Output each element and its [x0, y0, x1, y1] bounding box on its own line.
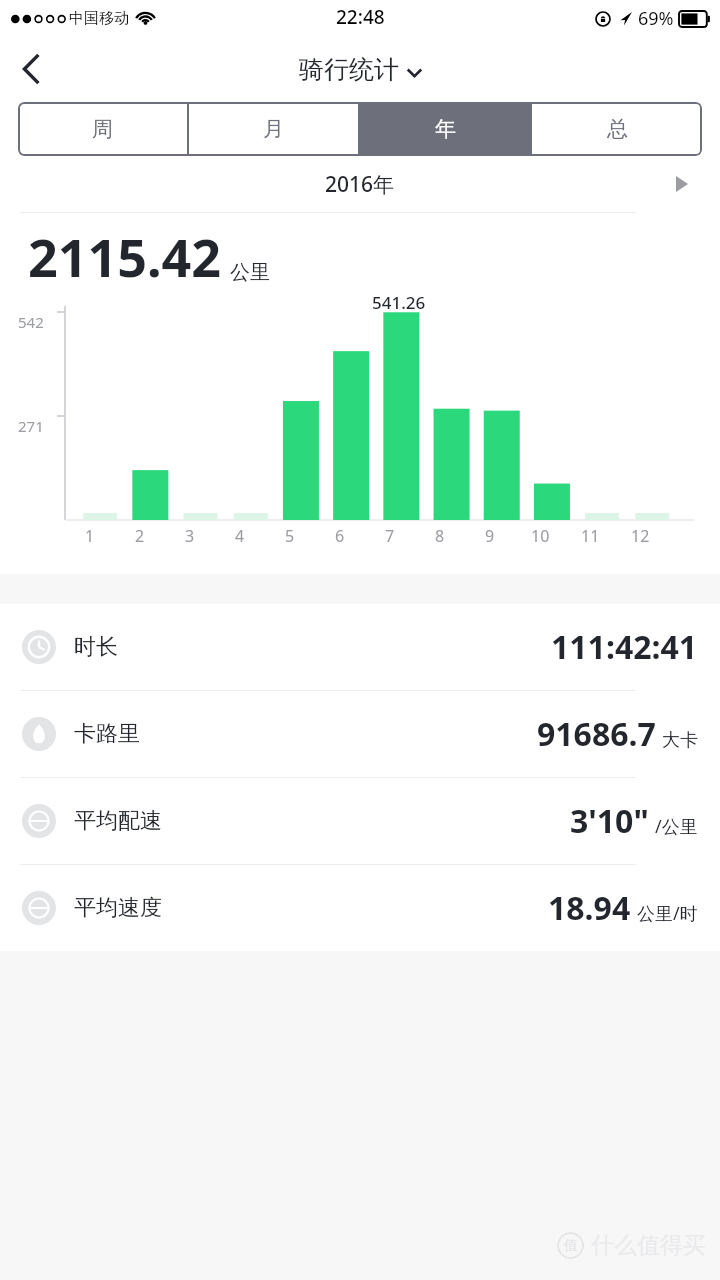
button[interactable]: 骑行统计	[293, 48, 428, 91]
staticText: 69%	[638, 6, 674, 31]
staticText: /公里	[655, 814, 698, 839]
button[interactable]: 月	[189, 102, 358, 156]
staticText: 2016年	[325, 170, 395, 199]
staticText: 值	[564, 1237, 578, 1255]
button[interactable]: 卡路里	[0, 691, 720, 777]
button[interactable]: Back	[0, 37, 64, 101]
staticText: 10	[531, 525, 550, 547]
staticText: 91686.7	[537, 712, 656, 756]
staticText: 8	[435, 525, 445, 547]
staticText: 542	[18, 312, 44, 332]
staticText: 时长	[74, 633, 118, 661]
button[interactable]: 年	[360, 102, 530, 156]
staticText: 7	[385, 525, 395, 547]
staticText: 大卡	[662, 729, 698, 752]
staticText: 541.26	[372, 291, 426, 314]
staticText: 周	[92, 116, 113, 142]
staticText: 11	[581, 525, 600, 547]
staticText: 9	[485, 525, 495, 547]
button[interactable]: 平均配速	[0, 778, 720, 864]
staticText: 2	[135, 525, 145, 547]
button[interactable]: 总	[532, 102, 702, 156]
staticText: 公里	[230, 260, 270, 285]
staticText: 3	[185, 525, 195, 547]
staticText: 3'10"	[570, 799, 649, 843]
staticText: 平均速度	[74, 894, 162, 922]
staticText: 卡路里	[74, 720, 140, 748]
staticText: 111:42:41	[551, 625, 698, 669]
staticText: 什么值得买	[591, 1231, 706, 1260]
staticText: 6	[335, 525, 345, 547]
staticText: 22:48	[336, 4, 385, 30]
staticText: 平均配速	[74, 807, 162, 835]
staticText: 中国移动	[69, 9, 129, 28]
staticText: 总	[607, 116, 628, 142]
staticText: 骑行统计	[299, 54, 399, 85]
button[interactable]: 平均速度	[0, 865, 720, 951]
staticText: 2115.42	[28, 221, 222, 292]
staticText: 公里/时	[637, 901, 698, 926]
button[interactable]: 时长	[0, 604, 720, 690]
button[interactable]: 周	[18, 102, 187, 156]
staticText: 12	[631, 525, 650, 547]
staticText: 5	[285, 525, 295, 547]
staticText: 271	[18, 416, 44, 436]
staticText: 4	[235, 525, 245, 547]
staticText: 1	[85, 525, 95, 547]
button[interactable]: 值	[557, 1231, 706, 1260]
button[interactable]: Next year	[664, 166, 700, 202]
staticText: 年	[435, 116, 456, 142]
staticText: 月	[263, 116, 284, 142]
staticText: 18.94	[548, 886, 631, 930]
